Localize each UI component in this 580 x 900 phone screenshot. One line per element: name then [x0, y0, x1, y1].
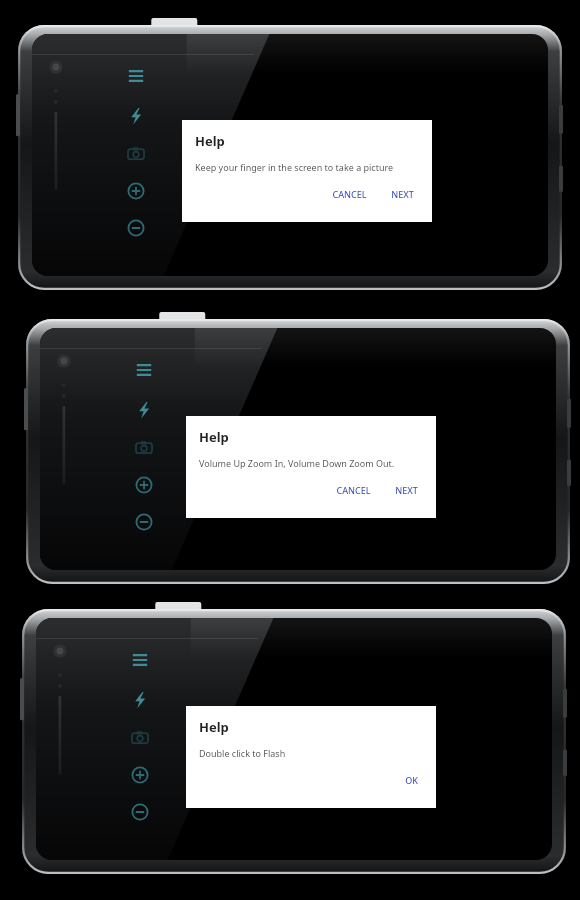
staticText: Volume Up Zoom In, Volume Down Zoom Out. [199, 457, 395, 469]
button[interactable]: Camera [132, 436, 156, 460]
button[interactable]: OK [399, 771, 424, 789]
button[interactable]: Flash [124, 104, 148, 128]
button[interactable]: Zoom out [128, 800, 152, 824]
button[interactable]: CANCEL [330, 481, 377, 499]
button[interactable]: Zoom in [124, 179, 148, 203]
button[interactable]: Menu [124, 64, 148, 88]
staticText: Help [199, 428, 229, 446]
button[interactable]: Zoom in [132, 473, 156, 497]
button[interactable]: NEXT [385, 185, 420, 203]
button[interactable]: CANCEL [326, 185, 373, 203]
staticText: CANCEL [332, 188, 367, 200]
button[interactable]: NEXT [389, 481, 424, 499]
staticText: Keep your finger in the screen to take a… [195, 161, 394, 173]
button[interactable]: Menu [132, 358, 156, 382]
staticText: CANCEL [336, 484, 371, 496]
button[interactable]: Camera [124, 142, 148, 166]
staticText: Help [199, 718, 229, 736]
staticText: Double click to Flash [199, 747, 286, 759]
staticText: Help [195, 132, 225, 150]
button[interactable]: Zoom out [132, 510, 156, 534]
staticText: NEXT [395, 484, 418, 496]
button[interactable]: Menu [128, 648, 152, 672]
button[interactable]: Flash [132, 398, 156, 422]
button[interactable]: Camera [128, 726, 152, 750]
button[interactable]: Zoom in [128, 763, 152, 787]
button[interactable]: Zoom out [124, 216, 148, 240]
staticText: OK [405, 774, 418, 786]
button[interactable]: Flash [128, 688, 152, 712]
staticText: NEXT [391, 188, 414, 200]
